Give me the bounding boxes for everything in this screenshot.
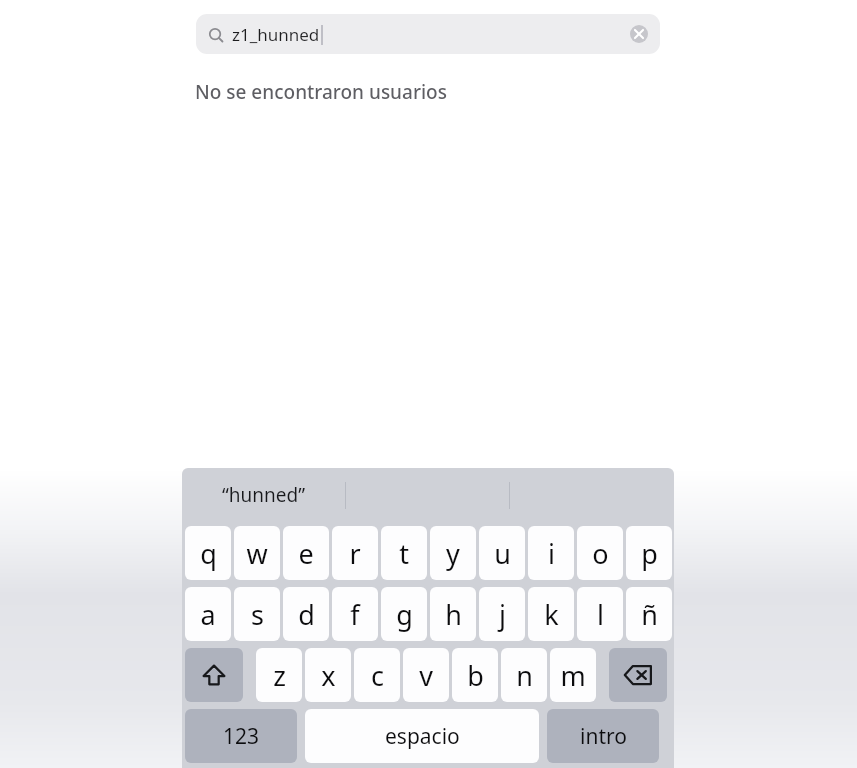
button[interactable]: Mayúsculas <box>185 648 243 702</box>
staticText: r <box>349 535 361 572</box>
staticText: l <box>597 596 604 633</box>
button[interactable]: i <box>528 526 574 580</box>
button[interactable]: ñ <box>626 587 672 641</box>
button[interactable]: a <box>185 587 231 641</box>
staticText: j <box>499 596 506 633</box>
staticText: o <box>592 535 609 572</box>
staticText: z1_hunned <box>232 23 320 46</box>
staticText: d <box>298 596 315 633</box>
button[interactable]: n <box>501 648 547 702</box>
button[interactable]: y <box>430 526 476 580</box>
staticText: x <box>321 657 336 694</box>
button[interactable]: d <box>283 587 329 641</box>
staticText: i <box>548 535 555 572</box>
staticText: a <box>200 596 216 633</box>
button[interactable]: s <box>234 587 280 641</box>
staticText: “hunned” <box>222 482 306 508</box>
button[interactable]: g <box>381 587 427 641</box>
button[interactable]: h <box>430 587 476 641</box>
button[interactable]: Borrar texto <box>626 21 652 47</box>
staticText: t <box>399 535 409 572</box>
button[interactable]: b <box>452 648 498 702</box>
staticText: f <box>350 596 360 633</box>
staticText: p <box>641 535 658 572</box>
staticText: c <box>371 657 384 694</box>
button[interactable]: l <box>577 587 623 641</box>
staticText: g <box>396 596 413 633</box>
button[interactable]: u <box>479 526 525 580</box>
staticText: n <box>516 657 533 694</box>
staticText: w <box>246 535 268 572</box>
staticText: ñ <box>641 596 658 633</box>
button[interactable]: p <box>626 526 672 580</box>
button[interactable]: q <box>185 526 231 580</box>
button[interactable]: “hunned” <box>188 468 340 522</box>
staticText: y <box>446 535 460 572</box>
staticText: u <box>494 535 511 572</box>
staticText: m <box>560 657 586 694</box>
button[interactable]: 123 <box>185 709 297 763</box>
staticText: No se encontraron usuarios <box>195 79 447 105</box>
staticText: 123 <box>223 722 260 751</box>
button[interactable]: w <box>234 526 280 580</box>
staticText: s <box>251 596 264 633</box>
button[interactable]: z1_hunned <box>196 14 660 54</box>
button[interactable]: z <box>256 648 302 702</box>
staticText: z <box>273 657 286 694</box>
button[interactable]: f <box>332 587 378 641</box>
button[interactable]: intro <box>547 709 659 763</box>
staticText: k <box>544 596 559 633</box>
staticText: q <box>200 535 217 572</box>
button[interactable]: k <box>528 587 574 641</box>
button[interactable]: r <box>332 526 378 580</box>
button[interactable]: t <box>381 526 427 580</box>
staticText: e <box>298 535 314 572</box>
button[interactable]: c <box>354 648 400 702</box>
button[interactable]: o <box>577 526 623 580</box>
button[interactable]: e <box>283 526 329 580</box>
staticText: intro <box>580 722 627 751</box>
staticText: b <box>467 657 484 694</box>
staticText: espacio <box>385 722 460 751</box>
staticText: v <box>419 657 433 694</box>
button[interactable]: espacio <box>305 709 539 763</box>
button[interactable]: x <box>305 648 351 702</box>
button[interactable]: v <box>403 648 449 702</box>
button[interactable]: j <box>479 587 525 641</box>
button[interactable]: m <box>550 648 596 702</box>
button[interactable]: Retroceso <box>609 648 667 702</box>
staticText: h <box>445 596 462 633</box>
